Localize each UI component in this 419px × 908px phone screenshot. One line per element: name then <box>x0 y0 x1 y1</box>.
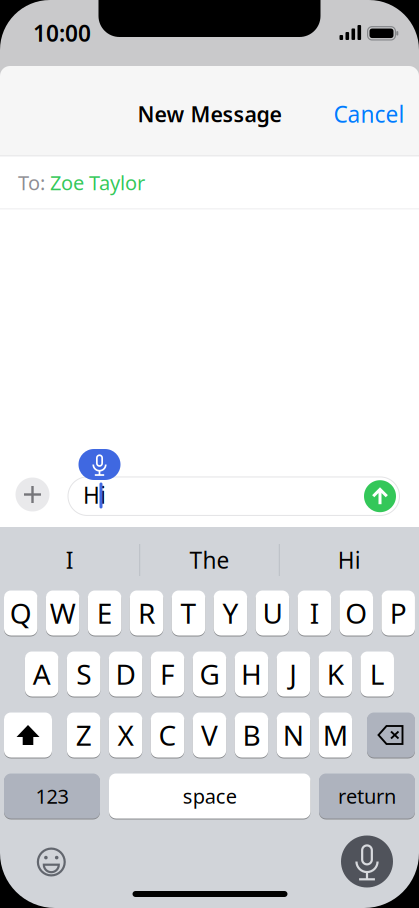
button[interactable]: V <box>193 712 226 758</box>
staticText: New Message <box>137 100 281 128</box>
button[interactable]: W <box>46 590 79 636</box>
button[interactable]: Cancel <box>333 99 404 129</box>
staticText: F <box>160 655 175 693</box>
staticText: P <box>390 594 407 632</box>
staticText: 10:00 <box>33 18 91 48</box>
staticText: return <box>338 783 396 809</box>
button[interactable]: I <box>298 590 331 636</box>
button[interactable] <box>367 712 415 758</box>
button[interactable]: Q <box>4 590 37 636</box>
button[interactable] <box>4 712 52 758</box>
button[interactable]: T <box>172 590 205 636</box>
staticText: J <box>289 655 297 693</box>
staticText: C <box>158 716 176 754</box>
staticText: O <box>345 594 367 632</box>
staticText: L <box>370 655 385 693</box>
staticText: I <box>310 594 319 632</box>
button[interactable]: J <box>277 651 310 697</box>
button[interactable]: Z <box>67 712 100 758</box>
staticText: T <box>180 594 196 632</box>
button[interactable]: S <box>67 651 100 697</box>
button[interactable]: D <box>109 651 142 697</box>
staticText: R <box>138 594 155 632</box>
button[interactable]: A <box>25 651 58 697</box>
staticText: M <box>323 716 348 754</box>
button[interactable]: U <box>256 590 289 636</box>
staticText: S <box>76 655 91 693</box>
button[interactable]: R <box>130 590 163 636</box>
staticText: 123 <box>35 783 68 809</box>
staticText: Hi <box>83 480 106 510</box>
staticText: The <box>189 545 229 575</box>
staticText: K <box>327 655 344 693</box>
button[interactable]: L <box>360 651 394 697</box>
button[interactable]: H <box>235 651 268 697</box>
staticText: H <box>241 655 262 693</box>
staticText: U <box>262 594 282 632</box>
button[interactable]: 123 <box>4 773 100 819</box>
staticText: space <box>183 783 237 809</box>
staticText: I <box>66 545 74 575</box>
staticText: G <box>199 655 219 693</box>
button[interactable]: The <box>140 540 279 580</box>
button[interactable] <box>67 476 400 516</box>
staticText: X <box>118 716 134 754</box>
button[interactable]: space <box>109 773 310 819</box>
staticText: Hi <box>338 545 361 575</box>
button[interactable]: Hi <box>280 540 419 580</box>
button[interactable]: return <box>319 773 415 819</box>
staticText: N <box>283 716 304 754</box>
button[interactable] <box>364 480 396 512</box>
staticText: Y <box>222 594 238 632</box>
button[interactable] <box>0 156 419 208</box>
button[interactable] <box>341 835 393 887</box>
button[interactable]: E <box>88 590 121 636</box>
staticText: Cancel <box>333 99 404 129</box>
staticText: Z <box>76 716 92 754</box>
staticText: A <box>33 655 51 693</box>
button[interactable]: K <box>318 651 352 697</box>
button[interactable]: O <box>339 590 373 636</box>
button[interactable]: M <box>318 712 352 758</box>
button[interactable]: B <box>235 712 268 758</box>
button[interactable]: Y <box>214 590 247 636</box>
button[interactable]: P <box>381 590 415 636</box>
button[interactable] <box>37 847 66 876</box>
button[interactable] <box>78 449 120 480</box>
staticText: Zoe Taylor <box>50 169 145 196</box>
button[interactable]: N <box>277 712 310 758</box>
button[interactable]: X <box>109 712 142 758</box>
button[interactable] <box>15 477 49 511</box>
button[interactable]: C <box>151 712 184 758</box>
staticText: D <box>116 655 136 693</box>
staticText: E <box>97 594 113 632</box>
staticText: Q <box>10 594 32 632</box>
staticText: To: <box>18 169 45 196</box>
button[interactable]: F <box>151 651 184 697</box>
button[interactable]: G <box>193 651 226 697</box>
button[interactable]: I <box>0 540 139 580</box>
staticText: V <box>201 716 218 754</box>
staticText: W <box>50 594 76 632</box>
staticText: B <box>242 716 260 754</box>
